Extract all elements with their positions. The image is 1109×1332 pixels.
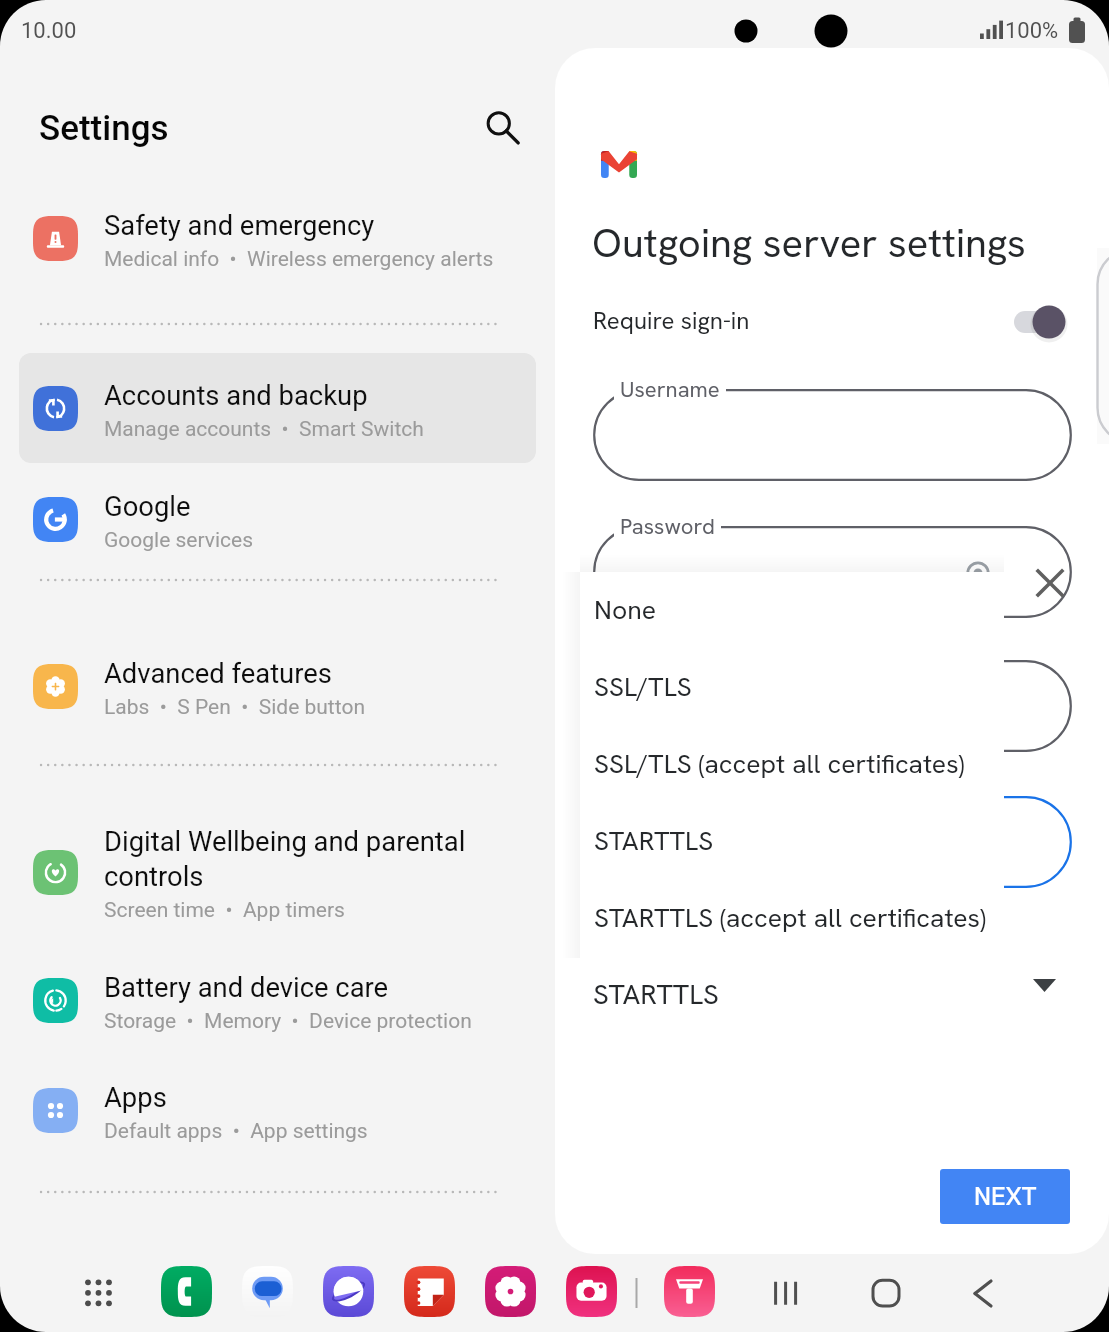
button[interactable]: Back (957, 1268, 1009, 1320)
staticText: Apps (104, 1082, 167, 1114)
button[interactable]: Google (19, 464, 536, 574)
button[interactable]: Require sign-in (1005, 298, 1085, 348)
button[interactable]: Accounts and backup (19, 353, 536, 463)
staticText: Storage • Memory • Device protection (104, 1009, 472, 1034)
staticText: Labs • S Pen • Side button (104, 695, 365, 720)
button[interactable]: Digital Wellbeing and parental controls (19, 800, 536, 945)
staticText: STARTTLS (accept all certificates) (594, 900, 986, 935)
staticText: Default apps • App settings (104, 1119, 368, 1144)
staticText: Password (620, 512, 715, 541)
staticText: Google services (104, 528, 254, 553)
staticText: Settings (39, 108, 169, 149)
button[interactable]: Battery and device care (19, 945, 536, 1055)
staticText: SSL/TLS (accept all certificates) (594, 746, 965, 781)
staticText: 10.00 (21, 18, 77, 44)
button[interactable]: Notes (404, 1266, 455, 1317)
staticText: Outgoing server settings (592, 217, 1026, 269)
button[interactable]: Apps (19, 1055, 536, 1165)
button[interactable]: Editor (664, 1266, 715, 1317)
staticText: Battery and device care (104, 972, 389, 1004)
staticText: 100% (1005, 18, 1059, 44)
staticText: Digital Wellbeing and parental controls (104, 826, 466, 893)
button[interactable]: None (580, 572, 1004, 649)
staticText: Require sign-in (593, 305, 750, 336)
button[interactable]: All apps (74, 1266, 126, 1318)
button[interactable]: Gallery (485, 1266, 536, 1317)
staticText: STARTTLS (594, 823, 714, 858)
button[interactable]: Recents (761, 1268, 813, 1320)
button[interactable]: Home (860, 1268, 912, 1320)
button[interactable]: SSL/TLS (580, 649, 1004, 726)
button[interactable]: Close (1027, 560, 1073, 606)
button[interactable]: SSL/TLS (accept all certificates) (580, 726, 1004, 803)
button[interactable]: Safety and emergency (19, 183, 536, 293)
button[interactable]: Internet (323, 1266, 374, 1317)
staticText: Google (104, 491, 191, 523)
staticText: None (594, 592, 657, 627)
staticText: Screen time • App timers (104, 898, 345, 923)
button[interactable]: STARTTLS (accept all certificates) (580, 880, 1004, 957)
staticText: Medical info • Wireless emergency alerts (104, 247, 494, 272)
staticText: NEXT (974, 1180, 1037, 1213)
button[interactable]: Messages (242, 1266, 293, 1317)
staticText: SSL/TLS (594, 669, 692, 704)
staticText: Advanced features (104, 658, 332, 690)
button[interactable]: Phone (161, 1266, 212, 1317)
button[interactable]: Search (474, 99, 530, 155)
staticText: Username (620, 375, 720, 404)
button[interactable]: Camera (566, 1266, 617, 1317)
button[interactable]: NEXT (940, 1169, 1070, 1224)
staticText: STARTTLS (593, 976, 719, 1012)
button[interactable]: STARTTLS (580, 803, 1004, 880)
staticText: Manage accounts • Smart Switch (104, 417, 424, 442)
staticText: Accounts and backup (104, 380, 368, 412)
button[interactable]: Advanced features (19, 631, 536, 741)
staticText: Safety and emergency (104, 210, 375, 242)
